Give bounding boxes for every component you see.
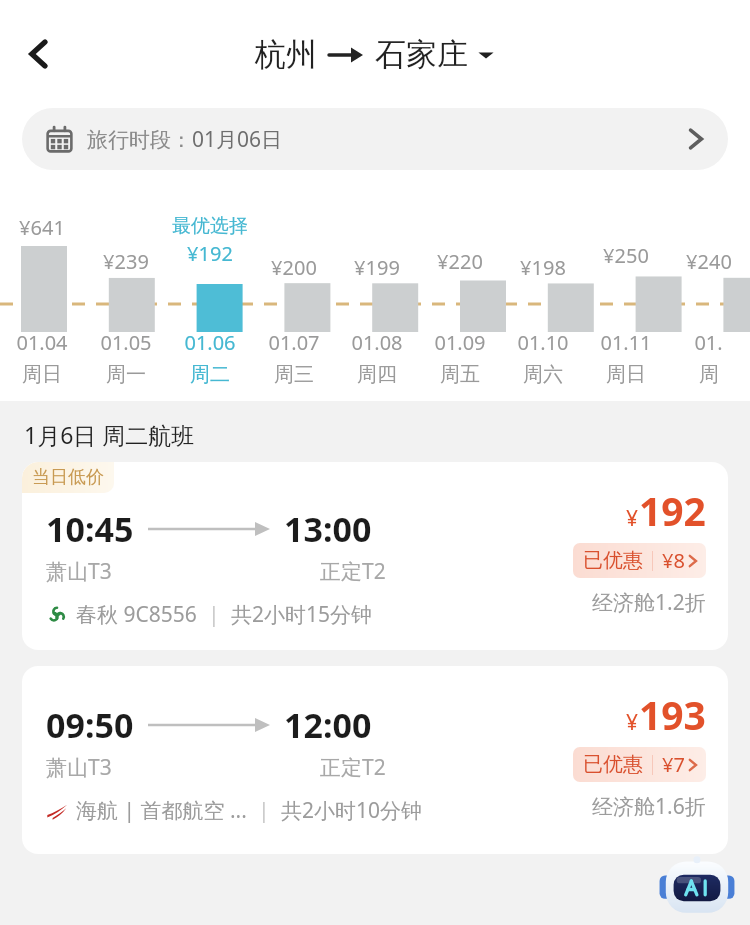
staticText: 周二 (190, 362, 230, 387)
staticText: ¥199 (354, 254, 400, 281)
staticText: 已优惠 (583, 752, 643, 777)
button[interactable]: AI assistant (658, 845, 736, 923)
staticText: 193 (639, 688, 706, 741)
staticText: ¥200 (271, 254, 317, 281)
button[interactable]: ¥240 (667, 214, 750, 389)
staticText: ¥7 (662, 751, 685, 778)
staticText: | (197, 600, 231, 629)
button[interactable]: Back (10, 25, 68, 83)
button[interactable]: 杭州 (255, 35, 495, 74)
staticText: 周 (699, 362, 719, 387)
button[interactable]: ¥641 (0, 214, 84, 389)
staticText: ¥239 (103, 248, 149, 275)
staticText: ¥220 (437, 248, 483, 275)
staticText: 01. (694, 329, 723, 356)
staticText: 萧山T3 (46, 557, 112, 586)
staticText: 旅行时段： (87, 127, 192, 153)
staticText: 周四 (357, 362, 397, 387)
button[interactable]: ¥220 (418, 214, 501, 389)
staticText: 192 (639, 484, 706, 537)
staticText: 周日 (22, 362, 62, 387)
staticText: | (247, 796, 281, 825)
button[interactable]: 已优惠 (573, 543, 706, 578)
button[interactable]: 最优选择 (168, 214, 252, 389)
staticText: 01.10 (517, 329, 569, 356)
staticText: 01.11 (600, 329, 652, 356)
staticText: ¥ (626, 504, 639, 533)
staticText: 01.07 (268, 329, 320, 356)
staticText: 已优惠 (583, 548, 643, 573)
staticText: 共2小时10分钟 (281, 796, 423, 825)
staticText: ¥250 (603, 242, 649, 269)
button[interactable]: 旅行时段： (22, 108, 728, 170)
staticText: 共2小时15分钟 (231, 600, 373, 629)
staticText: 周日 (606, 362, 646, 387)
staticText: ¥240 (686, 248, 732, 275)
staticText: 最优选择 (172, 214, 248, 238)
staticText: 01月06日 (192, 125, 283, 154)
staticText: 01.05 (100, 329, 152, 356)
staticText: 正定T2 (320, 753, 386, 782)
staticText: 海航 | 首都航空 ... (76, 796, 247, 825)
staticText: 1月6日 周二航班 (24, 419, 195, 450)
staticText: ¥8 (662, 547, 685, 574)
staticText: 当日低价 (32, 466, 104, 489)
button[interactable]: ¥198 (501, 214, 584, 389)
staticText: 10:45 (46, 506, 134, 552)
staticText: 01.04 (16, 329, 68, 356)
staticText: 经济舱1.6折 (592, 792, 706, 821)
button[interactable]: ¥200 (252, 214, 335, 389)
staticText: 12:00 (284, 702, 372, 748)
staticText: 萧山T3 (46, 753, 112, 782)
staticText: 周六 (523, 362, 563, 387)
staticText: 01.06 (184, 329, 236, 356)
staticText: 春秋 9C8556 (76, 600, 197, 629)
staticText: 周一 (106, 362, 146, 387)
staticText: ¥192 (187, 240, 233, 267)
staticText: 01.08 (351, 329, 403, 356)
button[interactable]: ¥239 (84, 214, 168, 389)
staticText: 周三 (274, 362, 314, 387)
staticText: 石家庄 (375, 35, 468, 74)
staticText: ¥641 (19, 214, 65, 241)
staticText: ¥ (626, 708, 639, 737)
staticText: ¥198 (520, 254, 566, 281)
staticText: 13:00 (284, 506, 372, 552)
button[interactable]: ¥250 (584, 214, 667, 389)
staticText: 09:50 (46, 702, 134, 748)
button[interactable]: 09:50 (22, 666, 728, 854)
button[interactable]: 当日低价 (22, 462, 728, 650)
staticText: 杭州 (255, 35, 317, 74)
button[interactable]: ¥199 (335, 214, 418, 389)
staticText: 正定T2 (320, 557, 386, 586)
staticText: 01.09 (434, 329, 486, 356)
staticText: 周五 (440, 362, 480, 387)
button[interactable]: 已优惠 (573, 747, 706, 782)
staticText: 经济舱1.2折 (592, 588, 706, 617)
